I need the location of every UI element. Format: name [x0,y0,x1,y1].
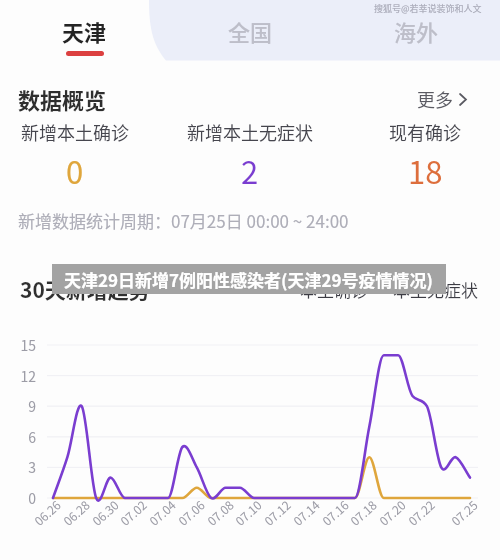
staticText: 3 [10,457,36,477]
staticText: 0 [10,488,36,508]
staticText: 搜狐号@若莘说装饰和人文 [374,2,482,15]
button[interactable]: 本土确诊 [286,277,478,302]
staticText: 12 [10,366,36,386]
staticText: 新增本土无症状 [187,119,313,145]
staticText: 07.25 [447,496,481,529]
staticText: 2 [241,148,259,193]
staticText: 6 [10,427,36,447]
staticText: 现有确诊 [389,119,461,145]
staticText: 本土确诊 [300,277,368,302]
staticText: 新增本土确诊 [21,119,129,145]
staticText: 海外 [394,15,439,47]
staticText: 07.04 [145,496,179,529]
staticText: 06.28 [59,496,93,529]
staticText: 07.12 [260,496,294,529]
staticText: 本土无症状 [393,277,478,302]
staticText: 新增数据统计周期：07月25日 00:00 ~ 24:00 [18,208,349,233]
staticText: 07.06 [174,496,208,529]
staticText: 30天新增趋势 [20,274,150,304]
staticText: 18 [408,148,443,193]
staticText: 全国 [228,15,273,47]
staticText: 15 [10,335,36,355]
staticText: 9 [10,396,36,416]
staticText: 天津29日新增7例阳性感染者(天津29号疫情情况) [64,267,434,292]
staticText: 06.26 [30,496,64,529]
staticText: 06.30 [88,496,122,529]
button[interactable]: 新增本土确诊 [0,119,155,193]
staticText: 07.20 [375,496,409,529]
button[interactable]: 更多 [417,86,467,112]
button[interactable]: 现有确诊 [345,119,500,193]
staticText: 更多 [417,86,453,112]
button[interactable]: 全国 [190,0,310,61]
staticText: 天津 [62,15,107,47]
staticText: 07.14 [289,496,323,529]
staticText: 07.22 [404,496,438,529]
staticText: 07.10 [231,496,265,529]
button[interactable]: 海外 [356,0,476,61]
button[interactable]: 天津 [24,0,144,61]
button[interactable]: 新增本土无症状 [170,119,330,193]
staticText: 07.02 [116,496,150,529]
staticText: 数据概览 [18,83,107,115]
staticText: 07.08 [203,496,237,529]
staticText: 07.18 [346,496,380,529]
staticText: 0 [66,148,84,193]
staticText: 07.16 [318,496,352,529]
